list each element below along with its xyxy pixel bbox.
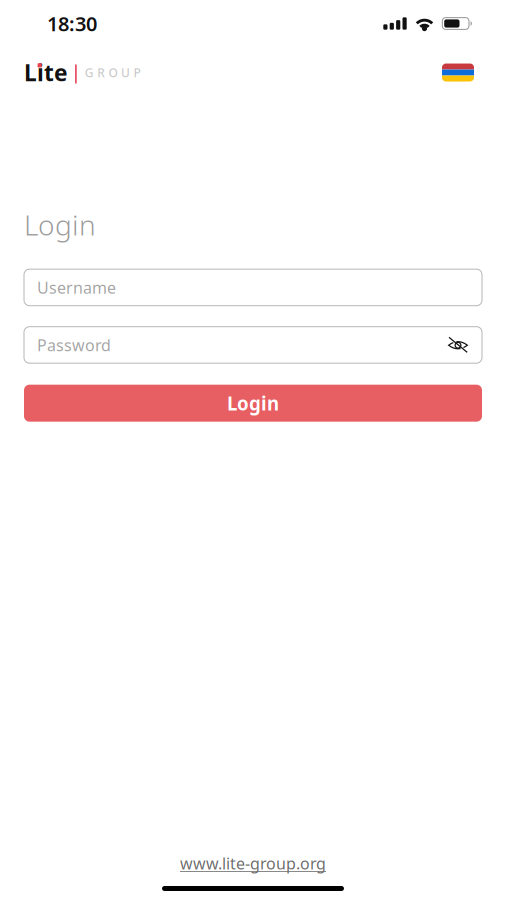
staticText: 18:30 bbox=[47, 10, 97, 37]
staticText: O bbox=[109, 64, 118, 80]
button[interactable]: Show password bbox=[437, 327, 482, 363]
button[interactable]: Login bbox=[24, 385, 482, 422]
staticText: Login bbox=[24, 206, 96, 243]
staticText: P bbox=[133, 64, 140, 80]
staticText: U bbox=[121, 64, 130, 80]
button[interactable]: Password bbox=[24, 327, 437, 363]
staticText: Login bbox=[227, 391, 279, 416]
button[interactable]: Select language bbox=[442, 63, 474, 81]
staticText: Password bbox=[37, 334, 111, 355]
staticText: R bbox=[97, 64, 105, 80]
staticText: www.lite-group.org bbox=[180, 853, 326, 874]
staticText: Lite bbox=[24, 57, 68, 87]
button[interactable]: www.lite-group.org bbox=[180, 853, 326, 874]
staticText: G bbox=[85, 64, 94, 80]
button[interactable]: Username bbox=[24, 269, 482, 306]
staticText: Username bbox=[37, 277, 116, 298]
